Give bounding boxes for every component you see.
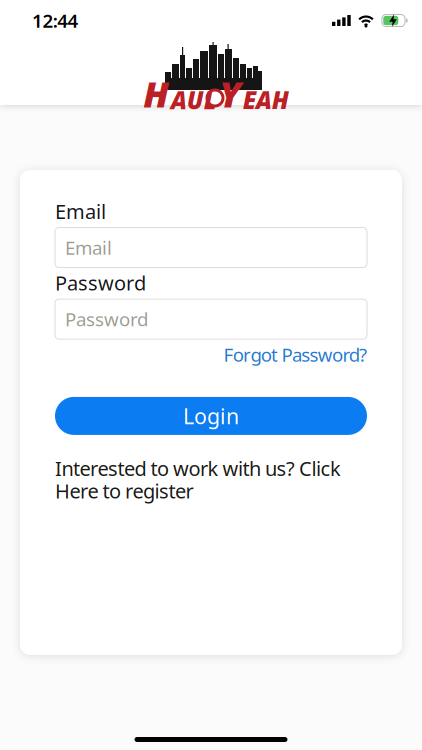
staticText: Password	[65, 307, 148, 331]
staticText: H	[143, 70, 169, 117]
staticText: Y	[219, 70, 241, 117]
staticText: AUL	[171, 84, 217, 116]
staticText: Forgot Password?	[223, 342, 367, 367]
button[interactable]: Interested to work with us? Click Here t…	[55, 455, 341, 504]
staticText: Email	[55, 198, 106, 225]
staticText: EAH	[243, 84, 289, 116]
button[interactable]: Forgot Password?	[223, 342, 367, 367]
staticText: 12:44	[32, 8, 79, 33]
textField[interactable]: Email	[65, 235, 359, 260]
staticText: Email	[65, 235, 112, 260]
textField[interactable]: Password	[65, 307, 359, 331]
staticText: Interested to work with us? Click Here t…	[55, 455, 341, 504]
staticText: Login	[183, 402, 239, 430]
staticText: Password	[55, 270, 146, 296]
button[interactable]: Login	[55, 397, 367, 435]
